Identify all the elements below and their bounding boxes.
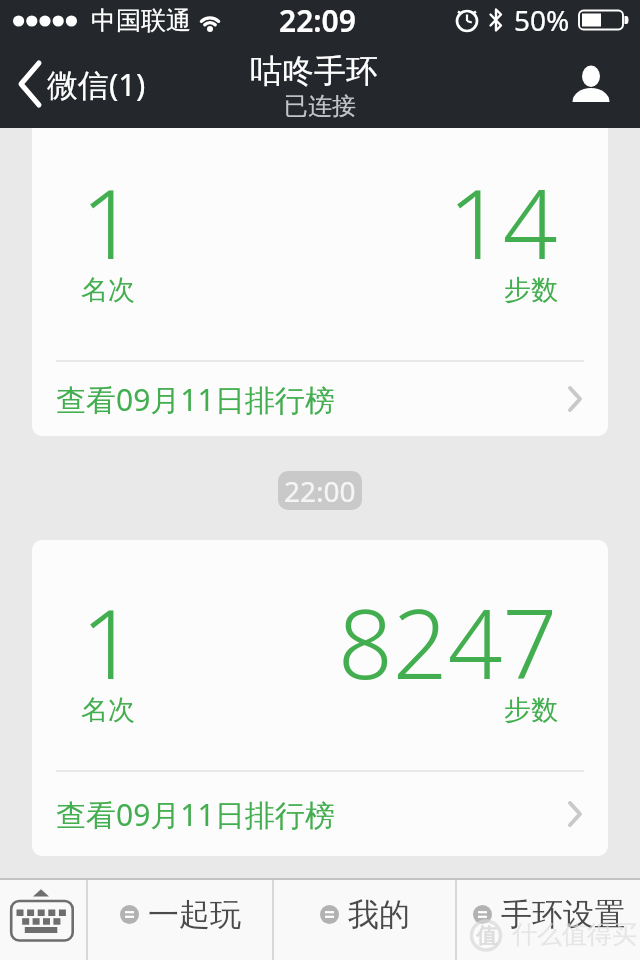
- staticText: 1: [81, 576, 136, 707]
- button[interactable]: 手环设置: [457, 880, 640, 960]
- button[interactable]: 微信(1): [17, 61, 146, 107]
- staticText: 微信(1): [47, 63, 146, 105]
- button[interactable]: [0, 880, 86, 960]
- button[interactable]: 我的: [274, 880, 455, 960]
- staticText: 什么值得买: [512, 919, 637, 950]
- button[interactable]: 查看09月11日排行榜: [32, 772, 608, 856]
- staticText: 8247: [338, 576, 558, 707]
- staticText: 值: [476, 923, 497, 949]
- staticText: 手环设置: [501, 895, 625, 934]
- staticText: 步数: [504, 273, 558, 307]
- button[interactable]: 一起玩: [88, 880, 272, 960]
- button[interactable]: [568, 62, 612, 106]
- staticText: 1: [81, 156, 136, 287]
- staticText: 已连接: [284, 91, 356, 121]
- staticText: 一起玩: [148, 895, 241, 934]
- staticText: 步数: [504, 693, 558, 727]
- staticText: 名次: [81, 273, 135, 307]
- staticText: 查看09月11日排行榜: [56, 379, 335, 420]
- staticText: 我的: [348, 895, 410, 934]
- staticText: 22:09: [279, 0, 356, 40]
- staticText: 22:00: [284, 472, 356, 510]
- staticText: 50%: [514, 1, 570, 39]
- staticText: 名次: [81, 693, 135, 727]
- staticText: 中国联通: [91, 5, 191, 36]
- button[interactable]: 查看09月11日排行榜: [32, 362, 608, 436]
- staticText: 咕咚手环: [250, 51, 378, 91]
- staticText: 查看09月11日排行榜: [56, 794, 335, 835]
- staticText: 14: [448, 156, 558, 287]
